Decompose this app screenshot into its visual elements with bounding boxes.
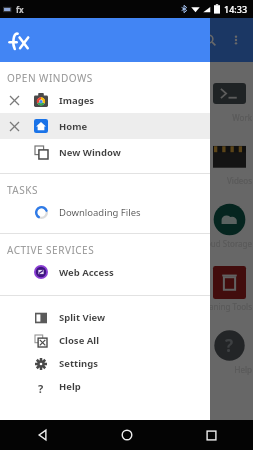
button[interactable]: Cloud Storage <box>0 200 253 263</box>
button[interactable]: Downloading Files <box>0 199 210 225</box>
button[interactable]: ? <box>0 375 210 398</box>
button[interactable]: Search <box>197 27 223 53</box>
staticText: ? <box>38 381 44 393</box>
staticText: ACTIVE SERVICES <box>7 243 95 257</box>
button[interactable]: Close Home <box>3 115 25 137</box>
staticText: Work <box>232 112 252 123</box>
button[interactable]: Close Images <box>3 89 25 111</box>
staticText: Settings <box>59 357 98 370</box>
button[interactable]: Close Home <box>0 113 210 139</box>
staticText: Videos <box>227 175 252 186</box>
staticText: Web Access <box>59 266 114 279</box>
button[interactable]: Cleaning Tools <box>0 263 253 326</box>
button[interactable]: ? <box>0 326 253 389</box>
button[interactable]: Web Access <box>0 259 210 285</box>
button[interactable]: Videos <box>0 137 253 200</box>
button[interactable]: Back <box>0 420 85 450</box>
staticText: Close All <box>59 334 100 347</box>
staticText: 14:33 <box>224 3 248 15</box>
button[interactable]: Work <box>0 74 253 137</box>
button[interactable]: Home <box>85 420 169 450</box>
staticText: Help <box>234 364 252 375</box>
staticText: TASKS <box>7 183 38 197</box>
staticText: ? <box>225 334 234 357</box>
staticText: fx <box>16 4 24 15</box>
button[interactable]: Settings <box>0 352 210 375</box>
button[interactable]: New Window <box>0 139 210 165</box>
staticText: Split View <box>59 311 106 324</box>
staticText: Cloud Storage <box>198 238 252 249</box>
staticText: Home <box>59 120 88 133</box>
staticText: Downloading Files <box>59 206 141 219</box>
staticText: Help <box>59 380 81 393</box>
staticText: New Window <box>59 146 121 159</box>
button[interactable]: Close Images <box>0 87 210 113</box>
button[interactable]: Close All <box>0 329 210 352</box>
staticText: Cleaning Tools <box>197 301 252 312</box>
staticText: Images <box>59 94 95 107</box>
button[interactable]: Split View <box>0 306 210 329</box>
staticText: OPEN WINDOWS <box>7 71 93 85</box>
button[interactable]: More options <box>223 27 249 53</box>
button[interactable]: Recents <box>169 420 253 450</box>
